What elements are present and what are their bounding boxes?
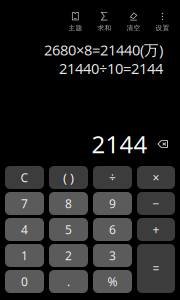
button[interactable]: 4 [5, 218, 44, 241]
button[interactable]: C [5, 166, 44, 189]
button[interactable]: 6 [93, 218, 132, 241]
button[interactable]: 9 [93, 192, 132, 215]
staticText: = [152, 260, 159, 276]
button[interactable]: 7 [5, 192, 44, 215]
button[interactable]: × [137, 166, 175, 189]
staticText: ( ) [63, 169, 74, 186]
button[interactable]: + [137, 218, 175, 241]
staticText: 1 [21, 247, 28, 263]
staticText: C [20, 169, 28, 185]
staticText: % [107, 273, 117, 289]
staticText: − [152, 195, 159, 211]
staticText: ÷ [109, 169, 116, 185]
button[interactable]: 主题 [61, 11, 90, 33]
staticText: × [152, 169, 159, 185]
staticText: 7 [21, 195, 28, 211]
button[interactable]: 设置 [148, 11, 177, 33]
staticText: 3 [109, 247, 116, 263]
button[interactable]: 3 [93, 244, 132, 267]
button[interactable]: 5 [49, 218, 88, 241]
staticText: . [67, 273, 70, 289]
button[interactable]: 8 [49, 192, 88, 215]
button[interactable]: 1 [5, 244, 44, 267]
button[interactable]: ( ) [49, 166, 88, 189]
staticText: + [152, 221, 159, 237]
button[interactable]: 清空 [119, 11, 148, 33]
staticText: 主题 [68, 24, 82, 32]
staticText: 2144 [91, 128, 147, 160]
button[interactable]: ÷ [93, 166, 132, 189]
staticText: 8 [65, 195, 72, 211]
button[interactable]: . [49, 270, 88, 293]
staticText: 4 [21, 221, 28, 237]
button[interactable]: % [93, 270, 132, 293]
button[interactable]: 2 [49, 244, 88, 267]
staticText: 设置 [155, 24, 169, 32]
staticText: 21440÷10=2144 [59, 58, 163, 78]
staticText: 求和 [97, 24, 111, 32]
staticText: 2680×8=21440(万) [44, 40, 163, 59]
staticText: 9 [109, 195, 116, 211]
button[interactable]: 0 [5, 270, 44, 293]
staticText: 2 [65, 247, 72, 263]
button[interactable]: = [137, 244, 175, 293]
staticText: 0 [21, 273, 28, 289]
staticText: 清空 [126, 24, 140, 32]
button[interactable]: Delete [157, 140, 168, 148]
button[interactable]: 求和 [90, 11, 119, 33]
button[interactable]: − [137, 192, 175, 215]
staticText: 5 [65, 221, 72, 237]
staticText: 6 [109, 221, 116, 237]
